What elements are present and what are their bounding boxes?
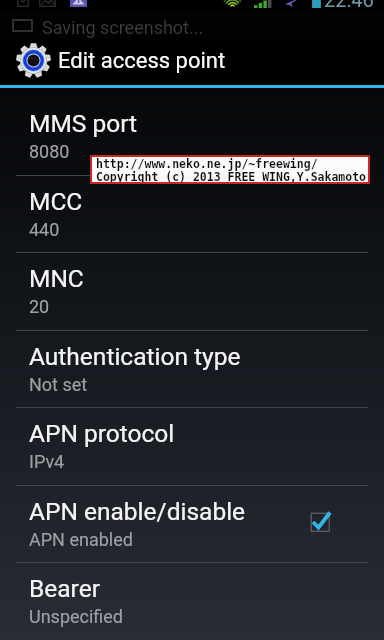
button[interactable]: Authentication type — [0, 330, 384, 408]
staticText: 22:46 — [324, 0, 374, 11]
staticText: 8080 — [29, 141, 70, 162]
staticText: Bearer — [29, 574, 100, 603]
button[interactable]: APN enabled checkbox — [308, 509, 333, 534]
button[interactable]: Bearer — [0, 562, 384, 640]
button[interactable]: APN enable/disable — [0, 485, 384, 563]
staticText: APN enabled — [29, 529, 133, 550]
staticText: Not set — [29, 374, 88, 395]
staticText: 440 — [29, 219, 60, 240]
staticText: MMS port — [29, 109, 138, 138]
staticText: APN enable/disable — [29, 497, 246, 526]
other: Settings — [16, 43, 51, 78]
button[interactable]: APN protocol — [0, 407, 384, 485]
staticText: 20 — [29, 296, 50, 317]
staticText: Edit access point — [58, 48, 226, 74]
staticText: APN protocol — [29, 419, 175, 448]
staticText: Authentication type — [29, 342, 241, 371]
staticText: Unspecified — [29, 606, 124, 627]
button[interactable]: MNC — [0, 252, 384, 330]
staticText: MCC — [29, 187, 83, 216]
staticText: Copyright (c) 2013 FREE WING,Y.Sakamoto — [96, 170, 367, 182]
button[interactable]: MCC — [0, 175, 384, 253]
button[interactable]: MMS port — [0, 97, 384, 175]
staticText: MNC — [29, 264, 84, 293]
staticText: http://www.neko.ne.jp/~freewing/ — [96, 157, 318, 170]
staticText: IPv4 — [29, 451, 65, 472]
staticText: Saving screenshot... — [42, 17, 204, 38]
